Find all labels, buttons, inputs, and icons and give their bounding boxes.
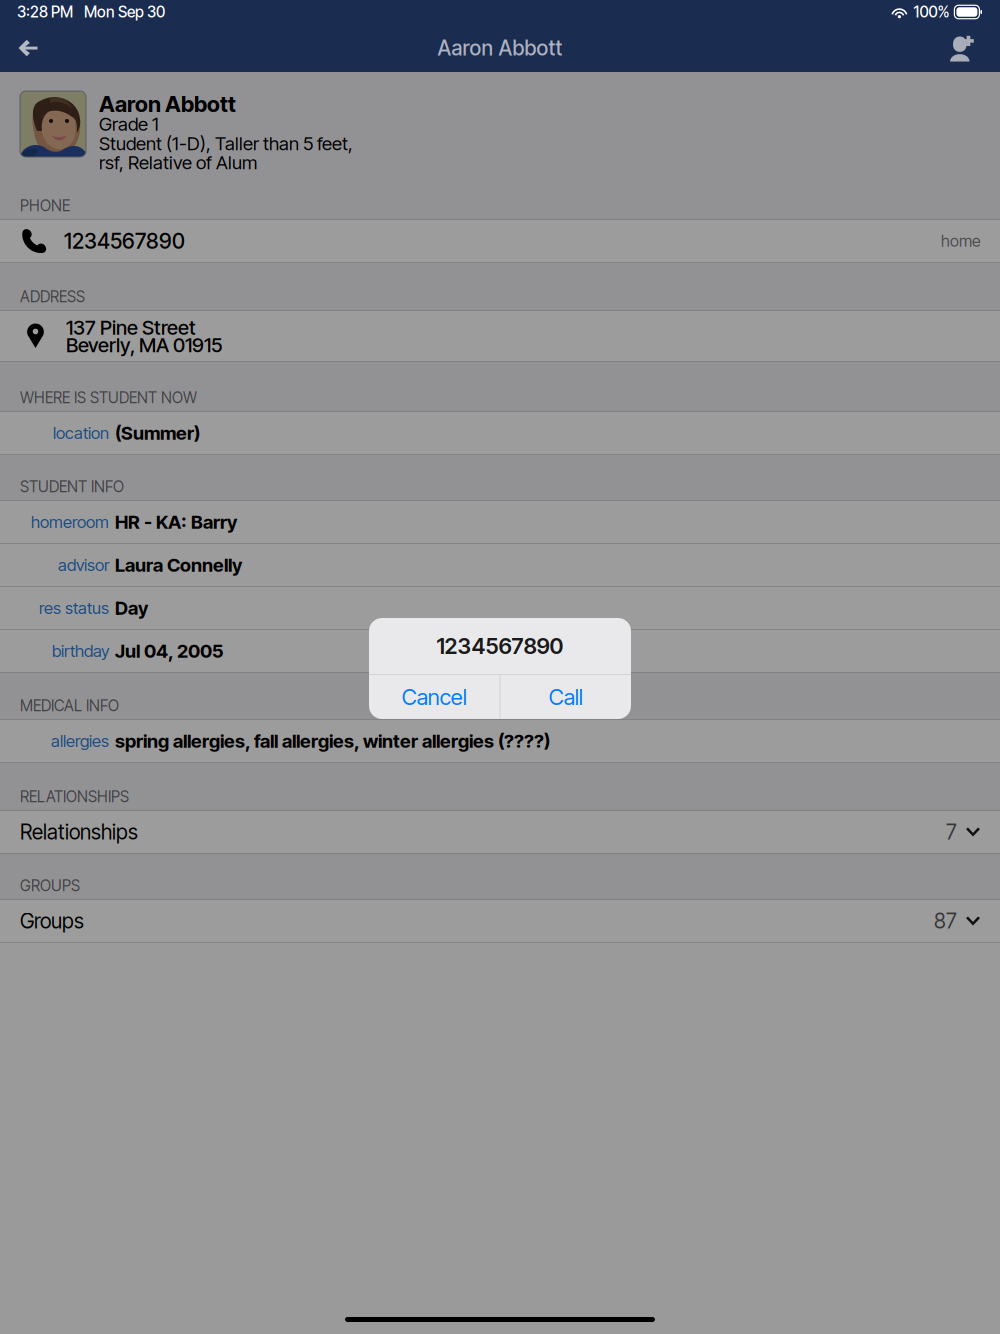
- staticText: allergies: [51, 731, 109, 751]
- staticText: STUDENT INFO: [20, 477, 124, 496]
- staticText: birthday: [52, 641, 109, 661]
- button[interactable]: Back: [0, 24, 56, 72]
- button[interactable]: birthday: [0, 630, 1000, 672]
- staticText: Grade 1: [99, 113, 159, 135]
- staticText: (Summer): [115, 422, 200, 444]
- button[interactable]: Add contact: [924, 24, 1000, 72]
- staticText: spring allergies, fall allergies, winter…: [115, 730, 550, 752]
- button[interactable]: 1234567890: [0, 220, 1000, 262]
- staticText: rsf, Relative of Alum: [99, 151, 257, 174]
- staticText: Beverly, MA 01915: [66, 333, 223, 357]
- staticText: res status: [39, 598, 109, 618]
- staticText: WHERE IS STUDENT NOW: [20, 388, 197, 407]
- button[interactable]: Groups: [0, 900, 1000, 942]
- button[interactable]: advisor: [0, 544, 1000, 586]
- button[interactable]: allergies: [0, 720, 1000, 762]
- staticText: MEDICAL INFO: [20, 696, 119, 715]
- staticText: 7: [946, 819, 957, 844]
- staticText: GROUPS: [20, 876, 80, 895]
- staticText: Jul 04, 2005: [115, 640, 223, 662]
- staticText: RELATIONSHIPS: [20, 787, 129, 806]
- button[interactable]: location: [0, 412, 1000, 454]
- staticText: 137 Pine Street: [66, 315, 196, 340]
- staticText: 3:28 PM: [17, 3, 73, 21]
- staticText: home: [941, 231, 981, 251]
- staticText: Mon Sep 30: [84, 3, 165, 21]
- staticText: homeroom: [31, 512, 109, 532]
- staticText: Groups: [20, 908, 84, 933]
- staticText: Cancel: [402, 684, 467, 710]
- button[interactable]: 137 Pine Street: [0, 311, 1000, 361]
- staticText: location: [53, 423, 109, 443]
- staticText: Aaron Abbott: [437, 35, 562, 60]
- staticText: 1234567890: [64, 228, 185, 254]
- staticText: Laura Connelly: [115, 554, 242, 576]
- staticText: PHONE: [20, 196, 70, 215]
- staticText: Student (1-D), Taller than 5 feet,: [99, 132, 353, 155]
- staticText: 100%: [913, 3, 949, 21]
- staticText: Aaron Abbott: [99, 91, 236, 117]
- button[interactable]: Call: [500, 675, 631, 719]
- staticText: 1234567890: [436, 633, 563, 659]
- button[interactable]: Cancel: [369, 675, 499, 719]
- staticText: Call: [549, 684, 583, 710]
- button[interactable]: Relationships: [0, 811, 1000, 853]
- staticText: Day: [115, 597, 148, 619]
- staticText: advisor: [58, 555, 109, 575]
- staticText: 87: [934, 908, 957, 933]
- button[interactable]: homeroom: [0, 501, 1000, 543]
- staticText: ADDRESS: [20, 287, 85, 306]
- staticText: HR - KA: Barry: [115, 511, 237, 533]
- staticText: Relationships: [20, 819, 138, 844]
- button[interactable]: res status: [0, 587, 1000, 629]
